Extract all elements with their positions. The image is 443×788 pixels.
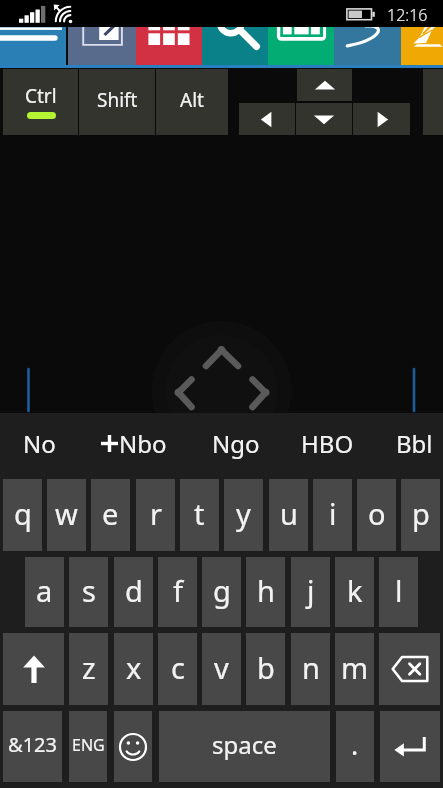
button[interactable]: o [357,479,396,551]
staticText: ENG [72,734,105,756]
staticText: f [173,571,183,610]
staticText: i [329,494,337,533]
staticText: Ngo [212,427,260,460]
staticText: n [302,648,320,687]
staticText: &123 [8,731,57,758]
staticText: Bbl [396,427,433,460]
staticText: e [102,494,119,533]
button[interactable]: Open in new [68,27,136,65]
button[interactable]: t [180,479,219,551]
button[interactable]: q [3,479,42,551]
staticText: space [212,728,277,761]
button[interactable]: Redo [334,27,401,65]
button[interactable]: c [158,633,197,705]
staticText: HBO [301,427,354,460]
staticText: g [213,571,231,610]
button[interactable]: Highlight [401,27,443,65]
button[interactable]: b [246,633,285,705]
button[interactable]: n [291,633,330,705]
staticText: s [82,571,96,610]
staticText: u [280,494,298,533]
button[interactable]: ENG [69,711,107,782]
button[interactable]: &123 [3,711,62,782]
staticText: Alt [180,87,204,113]
button[interactable]: Ngo [192,411,280,476]
button[interactable]: No [0,411,83,476]
button[interactable]: Shift [3,633,64,705]
button[interactable]: z [69,633,108,705]
staticText: p [412,494,430,533]
button[interactable]: Apps [136,27,202,65]
button[interactable]: e [91,479,130,551]
button[interactable]: x [114,633,153,705]
button[interactable]: k [335,557,374,627]
staticText: q [14,494,32,533]
staticText: . [351,726,359,763]
staticText: l [395,571,403,610]
button[interactable]: j [291,557,330,627]
staticText: 12:16 [387,4,428,26]
button[interactable]: Ctrl [3,69,78,135]
button[interactable]: Bbl [370,411,443,476]
button[interactable]: g [202,557,241,627]
staticText: No [23,427,56,460]
button[interactable]: m [335,633,374,705]
staticText: t [194,494,205,533]
button[interactable]: Shift [79,69,155,135]
button[interactable]: Alt [156,69,228,135]
button[interactable]: Move down [296,103,352,135]
button[interactable]: a [25,557,64,627]
button[interactable]: space [159,711,330,782]
button[interactable]: u [269,479,308,551]
staticText: m [341,648,369,687]
staticText: r [150,494,162,533]
staticText: o [368,494,386,533]
button[interactable]: Search [202,27,268,65]
button[interactable]: Move up [297,69,352,101]
button[interactable]: Move right [353,103,410,135]
staticText: y [236,494,251,533]
button[interactable]: h [246,557,285,627]
button[interactable]: p [401,479,440,551]
button[interactable]: . [336,711,374,782]
staticText: b [257,648,275,687]
button[interactable]: y [224,479,263,551]
staticText: z [82,648,96,687]
button[interactable]: Move left [239,103,295,135]
staticText: Nbo [119,427,167,460]
staticText: x [126,648,142,687]
staticText: h [257,571,275,610]
staticText: w [55,494,78,533]
staticText: d [125,571,143,610]
button[interactable]: HBO [283,411,371,476]
button[interactable]: v [202,633,241,705]
staticText: c [171,648,185,687]
button[interactable]: r [136,479,175,551]
button[interactable]: Backspace [379,633,440,705]
button[interactable]: w [47,479,86,551]
button[interactable]: f [158,557,197,627]
button[interactable]: Nbo [90,411,178,476]
button[interactable]: l [379,557,418,627]
button[interactable]: Keyboard [268,27,334,65]
staticText: a [36,571,53,610]
staticText: j [307,571,315,610]
staticText: k [347,571,363,610]
button[interactable]: d [114,557,153,627]
button[interactable]: Emoji [114,711,152,782]
button[interactable]: Notes [0,27,66,65]
staticText: v [214,648,229,687]
button[interactable]: Enter [380,711,440,782]
button[interactable]: i [313,479,352,551]
button[interactable]: s [69,557,108,627]
staticText: Shift [97,87,138,113]
staticText: Ctrl [25,83,57,109]
